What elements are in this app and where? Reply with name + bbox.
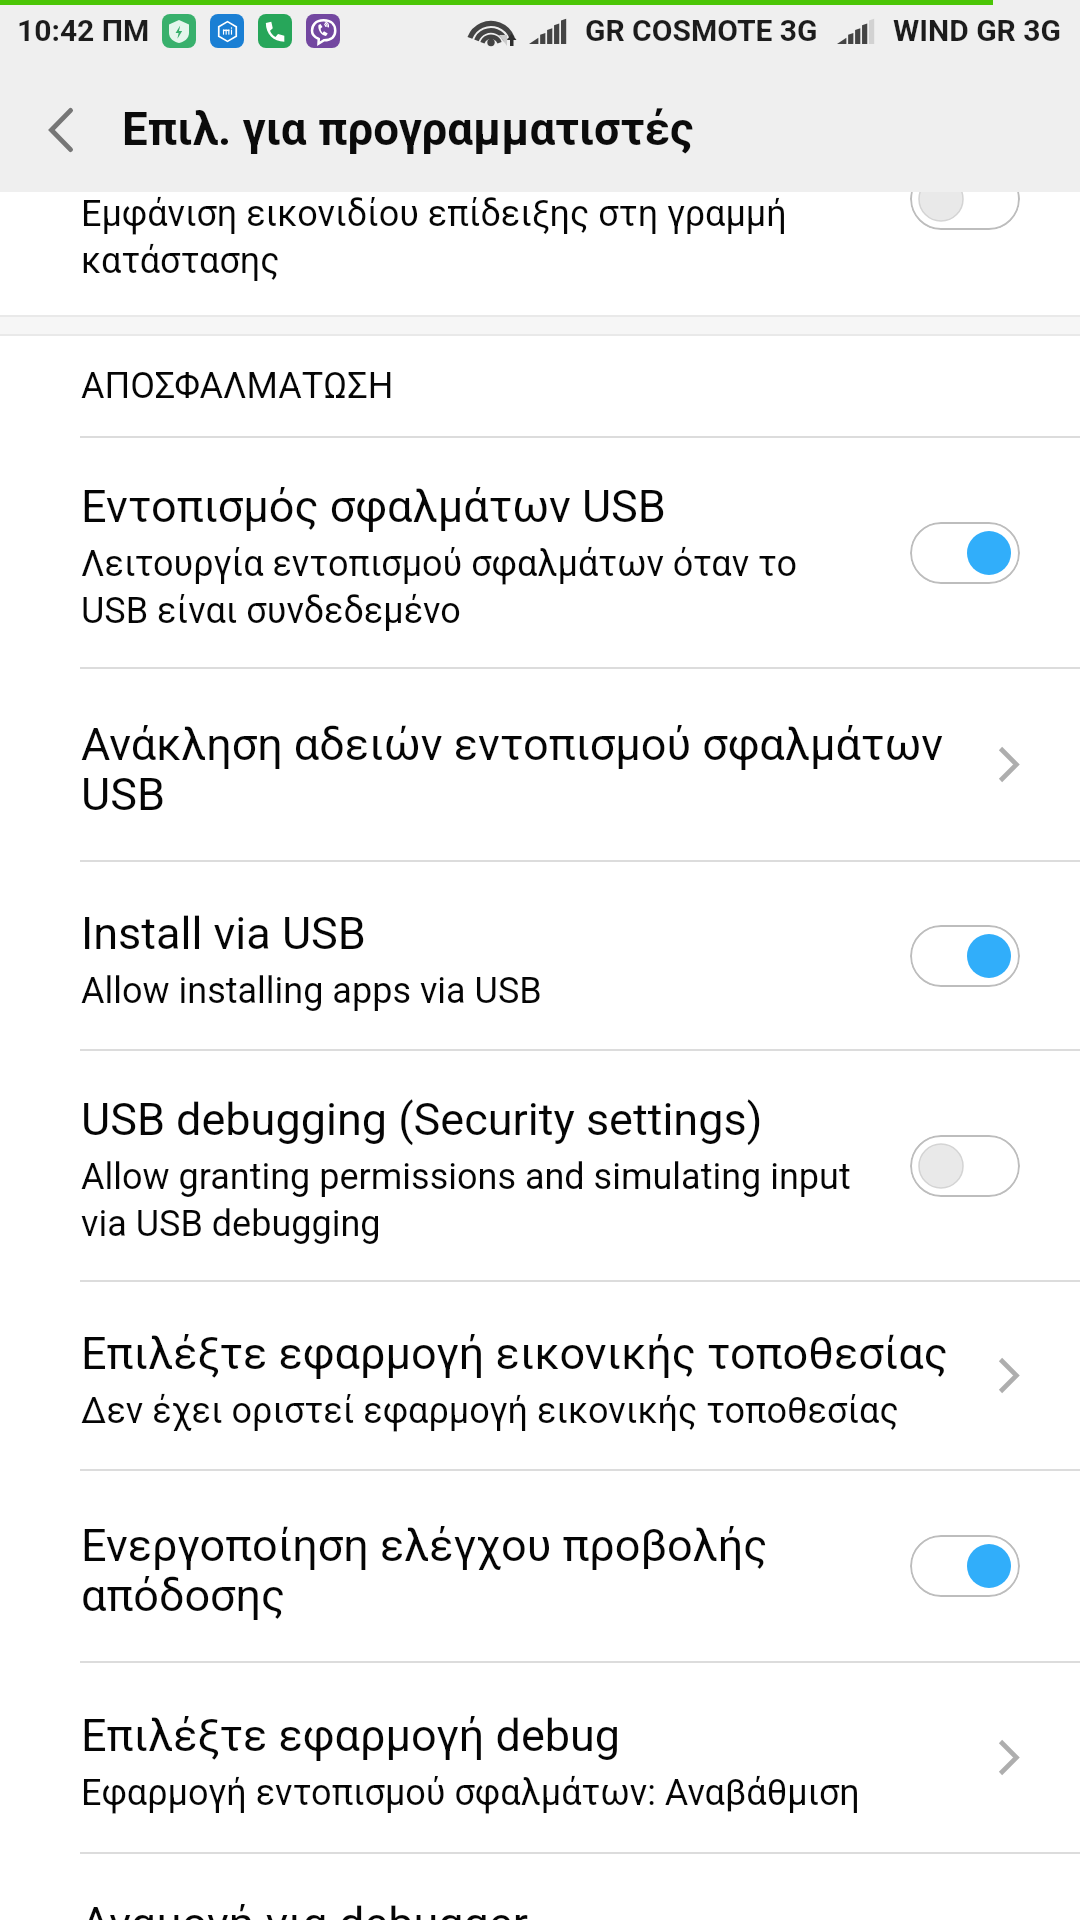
staticText: Ανάκληση αδειών εντοπισμού σφαλμάτων USB [81, 720, 976, 820]
staticText: ΑΠΟΣΦΑΛΜΑΤΩΣΗ [81, 365, 394, 407]
staticText: Install via USB [81, 909, 366, 959]
button[interactable] [0, 192, 1080, 313]
staticText: Επιλέξτε εφαρμογή debug [81, 1711, 621, 1761]
button[interactable]: Switch off [910, 192, 1020, 230]
staticText: Επιλέξτε εφαρμογή εικονικής τοποθεσίας [81, 1329, 948, 1379]
staticText: Αναμονή για debugger [81, 1899, 528, 1920]
staticText: Allow installing apps via USB [81, 966, 542, 1013]
staticText: Επιλ. για προγραμματιστές [122, 103, 694, 157]
staticText: Εντοπισμός σφαλμάτων USB [81, 482, 666, 532]
button[interactable]: Switch on [910, 925, 1020, 987]
button[interactable] [0, 1471, 1080, 1661]
button[interactable]: Switch off [910, 1135, 1020, 1197]
button[interactable] [0, 1282, 1080, 1469]
button[interactable]: Switch on [910, 1535, 1020, 1597]
staticText: Λειτουργία εντοπισμού σφαλμάτων όταν το … [81, 539, 851, 633]
button[interactable] [0, 669, 1080, 860]
staticText: WIND GR 3G [893, 13, 1061, 48]
staticText: USB debugging (Security settings) [81, 1095, 763, 1145]
staticText: Ενεργοποίηση ελέγχου προβολής απόδοσης [81, 1521, 851, 1621]
button[interactable] [0, 1051, 1080, 1280]
button[interactable]: Switch on [910, 522, 1020, 584]
staticText: 10:42 ΠΜ [17, 13, 150, 48]
staticText: Εφαρμογή εντοπισμού σφαλμάτων: Αναβάθμισ… [81, 1768, 860, 1815]
staticText: Δεν έχει οριστεί εφαρμογή εικονικής τοπο… [81, 1386, 899, 1433]
button[interactable]: Back [0, 68, 122, 192]
staticText: Allow granting permissions and simulatin… [81, 1152, 851, 1246]
staticText: GR COSMOTE 3G [585, 13, 818, 48]
button[interactable] [0, 1663, 1080, 1852]
staticText: Εμφάνιση εικονιδίου επίδειξης στη γραμμή… [81, 192, 851, 283]
button[interactable] [0, 862, 1080, 1049]
button[interactable] [0, 438, 1080, 667]
button[interactable] [0, 1854, 1080, 1920]
